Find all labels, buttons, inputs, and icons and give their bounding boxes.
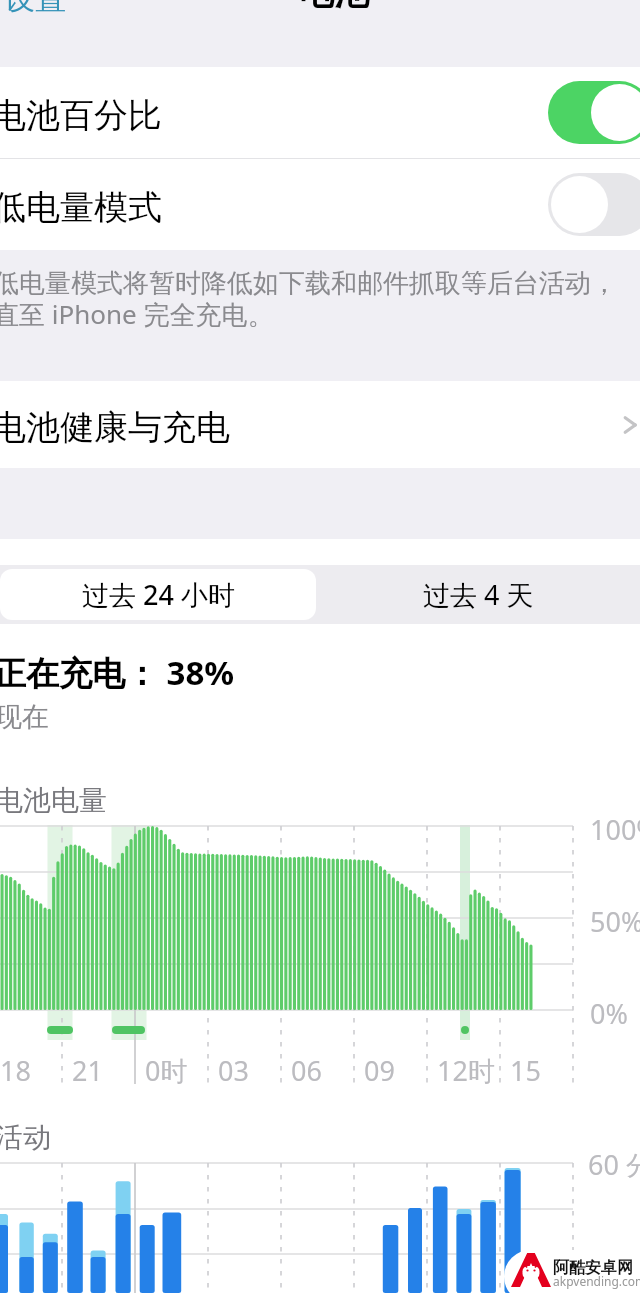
staticText: 电池 [299,0,369,14]
button[interactable]: Back to Settings [0,0,116,20]
staticText: 正在充电： 38% [0,650,235,695]
staticText: 低电量模式 [0,186,162,229]
staticText: 过去 4 天 [423,576,534,613]
staticText: 09 [364,1052,395,1089]
button[interactable]: 低电量模式 [0,159,640,250]
staticText: 电池百分比 [0,94,162,137]
staticText: 设置 [4,0,66,18]
staticText: 60 分 [588,1146,640,1183]
staticText: 50% [590,903,640,940]
button[interactable]: 低电量模式 [548,173,640,236]
staticText: 100% [590,811,640,848]
button[interactable]: 电池百分比 [548,81,640,144]
staticText: 03 [218,1052,249,1089]
staticText: 0% [590,995,628,1032]
staticText: 过去 24 小时 [82,576,235,613]
staticText: 电池电量 [0,783,107,818]
staticText: 阿酷安卓网 [553,1258,633,1278]
button[interactable]: 过去 4 天 [316,569,640,620]
staticText: 06 [291,1052,322,1089]
staticText: 电池健康与充电 [0,406,230,449]
staticText: 现在 [0,700,49,734]
staticText: 18 [0,1052,31,1089]
staticText: 低电量模式将暂时降低如下载和邮件抓取等后台活动， 直至 iPhone 完全充电。 [0,267,617,332]
staticText: 0时 [145,1052,188,1089]
button[interactable]: 电池百分比 [0,67,640,158]
button[interactable]: 电池健康与充电 [0,381,640,468]
staticText: akpvending.com [553,1273,640,1289]
button[interactable]: 过去 24 小时 [0,569,316,620]
staticText: 12时 [437,1052,495,1089]
staticText: 15 [510,1052,541,1089]
staticText: 活动 [0,1120,51,1155]
staticText: 21 [72,1052,103,1089]
